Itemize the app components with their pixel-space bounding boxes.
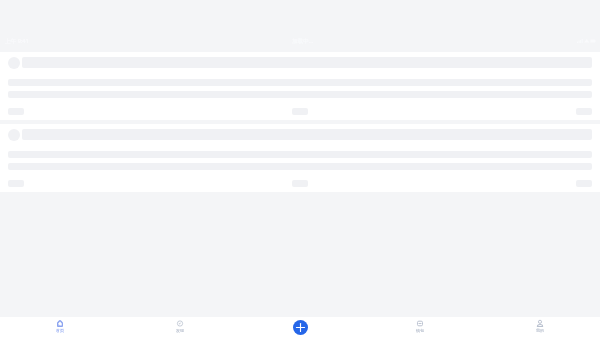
button[interactable]: Add xyxy=(293,320,308,335)
button[interactable]: 钱包 xyxy=(360,317,480,338)
button[interactable] xyxy=(0,124,600,192)
button[interactable] xyxy=(0,52,600,120)
staticText: 我的 xyxy=(536,328,544,333)
staticText: 钱包 xyxy=(416,328,424,333)
button[interactable]: 我的 xyxy=(480,317,600,338)
staticText: 首页 xyxy=(56,328,64,333)
button[interactable]: 首页 xyxy=(0,317,120,338)
button[interactable]: 发现 xyxy=(120,317,240,338)
staticText: 发现 xyxy=(176,328,184,333)
